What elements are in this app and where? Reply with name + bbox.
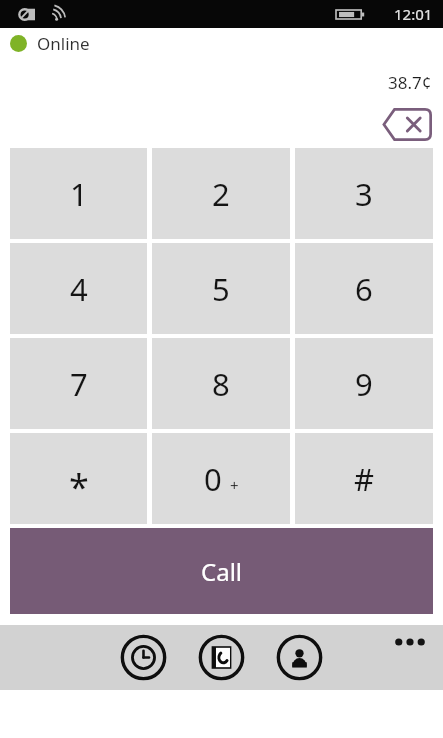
staticText: 12:01 <box>394 4 433 24</box>
staticText: Call <box>201 555 243 588</box>
button[interactable]: 9 <box>295 338 433 429</box>
button[interactable]: 5 <box>152 243 290 334</box>
button[interactable]: 1 <box>10 148 147 239</box>
button[interactable]: 0 <box>152 433 290 524</box>
staticText: 7 <box>70 363 88 405</box>
staticText: 4 <box>70 268 88 310</box>
button[interactable]: 4 <box>10 243 147 334</box>
staticText: 38.7¢ <box>388 71 432 94</box>
staticText: 8 <box>212 363 230 405</box>
staticText: 1 <box>70 173 88 215</box>
staticText: * <box>69 462 89 511</box>
staticText: 3 <box>355 173 373 215</box>
button[interactable]: # <box>295 433 433 524</box>
button[interactable]: Backspace <box>378 103 436 145</box>
staticText: 5 <box>212 268 230 310</box>
button[interactable]: Phonebook <box>197 633 246 682</box>
button[interactable]: 6 <box>295 243 433 334</box>
button[interactable]: * <box>10 433 147 524</box>
staticText: 2 <box>212 173 230 215</box>
staticText: Online <box>37 32 90 55</box>
staticText: 9 <box>355 363 373 405</box>
button[interactable]: 8 <box>152 338 290 429</box>
staticText: 0 <box>204 458 222 500</box>
button[interactable]: 2 <box>152 148 290 239</box>
staticText: 6 <box>355 268 373 310</box>
staticText: + <box>230 475 239 495</box>
button[interactable]: Contacts <box>275 633 324 682</box>
button[interactable]: Call history <box>119 633 168 682</box>
button[interactable]: 7 <box>10 338 147 429</box>
button[interactable]: More options <box>383 628 437 656</box>
button[interactable]: Online <box>0 28 443 59</box>
button[interactable]: Call <box>10 528 433 614</box>
button[interactable]: 3 <box>295 148 433 239</box>
staticText: # <box>354 458 375 500</box>
